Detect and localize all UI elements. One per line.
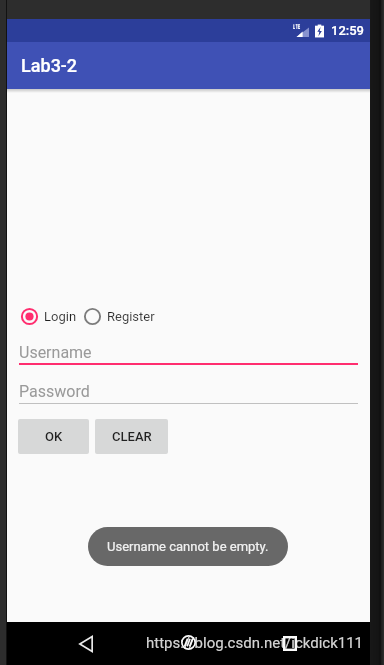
staticText: Username cannot be empty. bbox=[107, 539, 269, 554]
button[interactable]: Login bbox=[18, 305, 81, 328]
staticText: Login bbox=[44, 309, 77, 324]
button[interactable]: CLEAR bbox=[95, 419, 168, 454]
staticText: 12:59 bbox=[331, 23, 365, 38]
button[interactable]: Password bbox=[19, 382, 358, 406]
staticText: Lab3-2 bbox=[21, 55, 78, 76]
button[interactable]: Register bbox=[81, 305, 159, 328]
staticText: Register bbox=[107, 309, 155, 324]
staticText: CLEAR bbox=[112, 429, 152, 444]
staticText: https://blog.csdn.net/ickdick111 bbox=[146, 634, 364, 652]
button[interactable]: Username bbox=[19, 343, 358, 367]
staticText: Password bbox=[19, 382, 90, 401]
staticText: Username bbox=[19, 343, 92, 362]
button[interactable]: Back bbox=[68, 626, 104, 662]
staticText: OK bbox=[45, 429, 63, 444]
button[interactable]: OK bbox=[18, 419, 89, 454]
